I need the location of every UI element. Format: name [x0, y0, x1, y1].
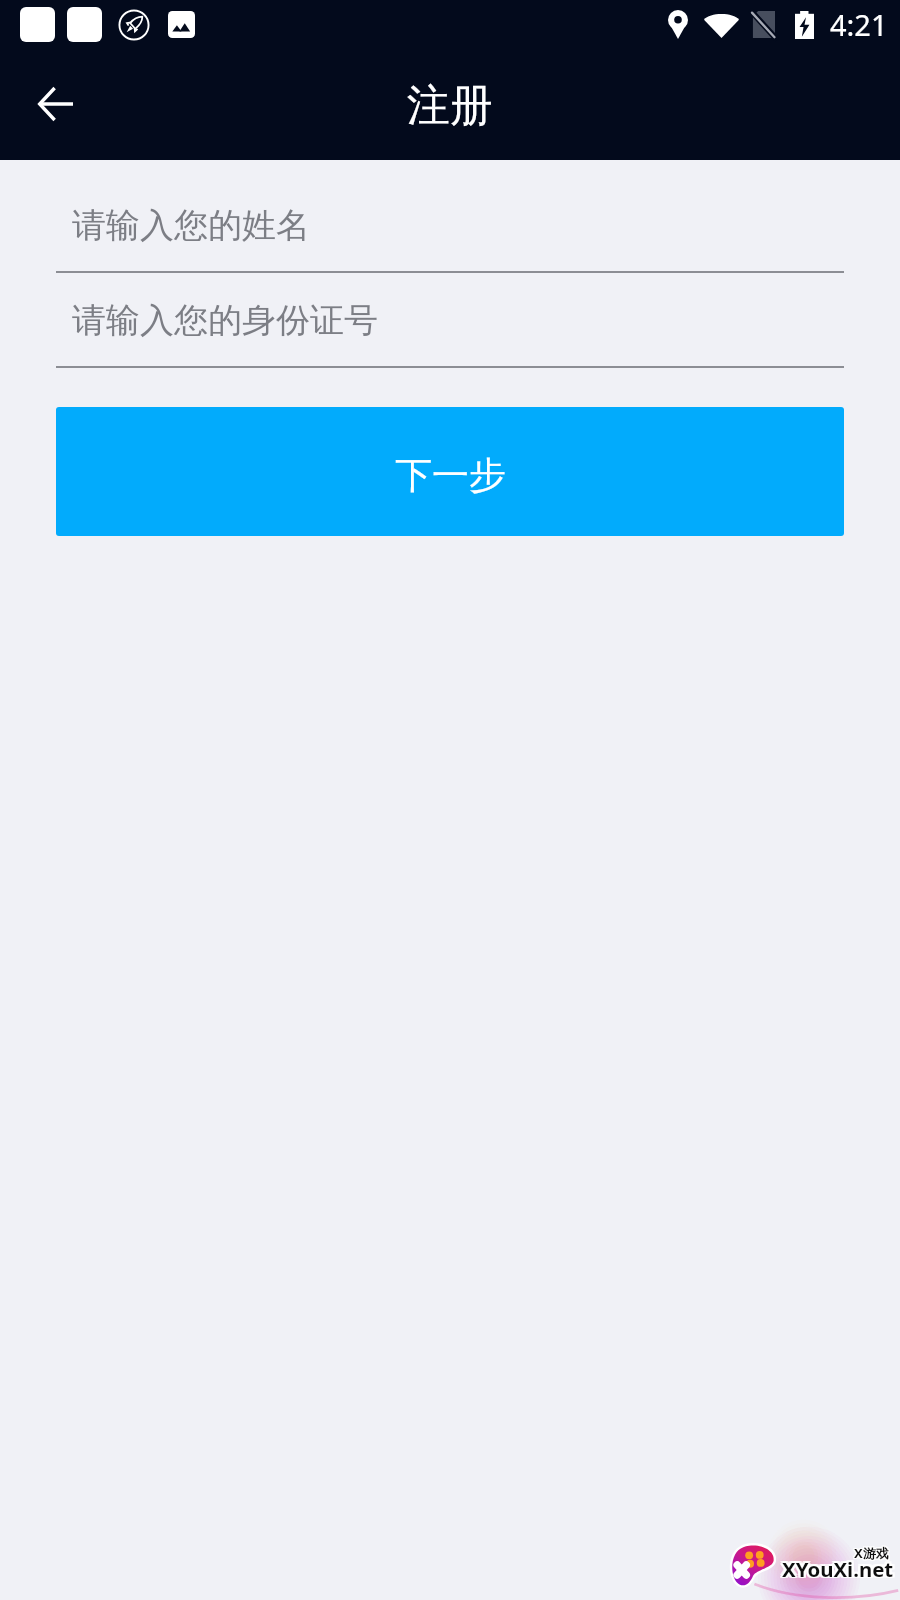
button[interactable]: 请输入您的姓名 — [56, 184, 844, 273]
staticText: XYouXi.net — [784, 1555, 896, 1583]
staticText: X游戏 — [855, 1545, 890, 1563]
staticText: X游戏 — [853, 1544, 888, 1562]
staticText: XYouXi.net — [784, 1556, 896, 1584]
staticText: XYouXi.net — [782, 1553, 894, 1581]
staticText: X游戏 — [854, 1544, 889, 1562]
staticText: XYouXi.net — [782, 1555, 894, 1583]
staticText: 下一步 — [395, 452, 506, 499]
staticText: 请输入您的身份证号 — [72, 299, 378, 342]
staticText: X游戏 — [854, 1545, 889, 1563]
staticText: 注册 — [407, 79, 493, 133]
staticText: XYouXi.net — [784, 1553, 896, 1581]
staticText: X游戏 — [855, 1544, 890, 1562]
staticText: X游戏 — [855, 1543, 890, 1561]
staticText: 请输入您的姓名 — [72, 204, 310, 247]
staticText: X游戏 — [853, 1543, 888, 1561]
button[interactable]: Back — [8, 56, 104, 152]
button[interactable]: 请输入您的身份证号 — [56, 279, 844, 368]
staticText: 4:21 — [830, 5, 888, 44]
button[interactable]: 下一步 — [56, 407, 844, 536]
staticText: X游戏 — [853, 1545, 888, 1563]
staticText: XYouXi.net — [780, 1555, 892, 1583]
staticText: X游戏 — [854, 1543, 889, 1561]
staticText: XYouXi.net — [782, 1556, 894, 1584]
staticText: XYouXi.net — [780, 1556, 892, 1584]
staticText: XYouXi.net — [780, 1553, 892, 1581]
